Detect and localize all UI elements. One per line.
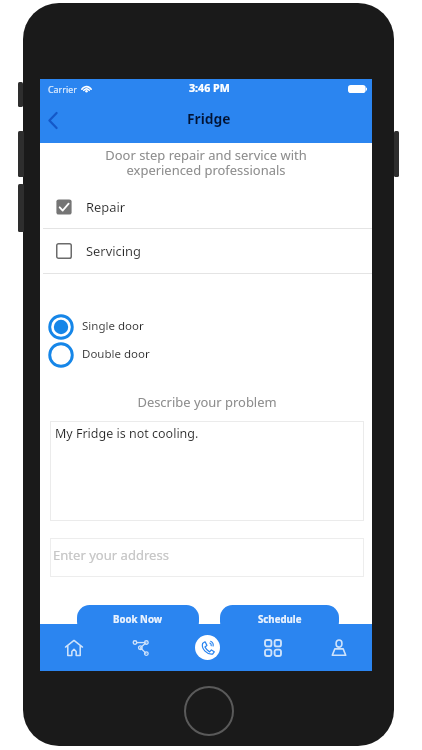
button[interactable]: My Fridge is not cooling.	[50, 421, 364, 521]
staticText: 3:46 PM	[189, 81, 230, 96]
staticText: Single door	[82, 318, 144, 334]
button[interactable]: Repair	[40, 185, 372, 229]
button[interactable]: Book Now	[77, 605, 199, 634]
button[interactable]: Enter your address	[50, 538, 364, 577]
staticText: Double door	[82, 346, 150, 362]
staticText: Schedule	[258, 613, 302, 626]
staticText: Door step repair and service with experi…	[40, 146, 372, 179]
button[interactable]: Share	[107, 624, 174, 671]
button[interactable]: Schedule	[220, 605, 339, 634]
staticText: Repair	[86, 198, 126, 216]
button[interactable]: Servicing	[40, 229, 372, 273]
button[interactable]: Home	[40, 624, 107, 671]
staticText: Carrier	[48, 83, 77, 95]
button[interactable]	[46, 312, 166, 338]
button[interactable]: Call	[174, 624, 240, 671]
button[interactable]	[46, 341, 166, 367]
button[interactable]: Apps	[240, 624, 306, 671]
button[interactable]: Back	[37, 104, 69, 136]
staticText: Book Now	[113, 613, 163, 626]
staticText: My Fridge is not cooling.	[55, 425, 199, 442]
staticText: Describe your problem	[41, 393, 373, 411]
staticText: Servicing	[86, 242, 141, 260]
staticText: Fridge	[187, 109, 231, 128]
staticText: Enter your address	[53, 546, 169, 564]
button[interactable]: Profile	[306, 624, 372, 671]
